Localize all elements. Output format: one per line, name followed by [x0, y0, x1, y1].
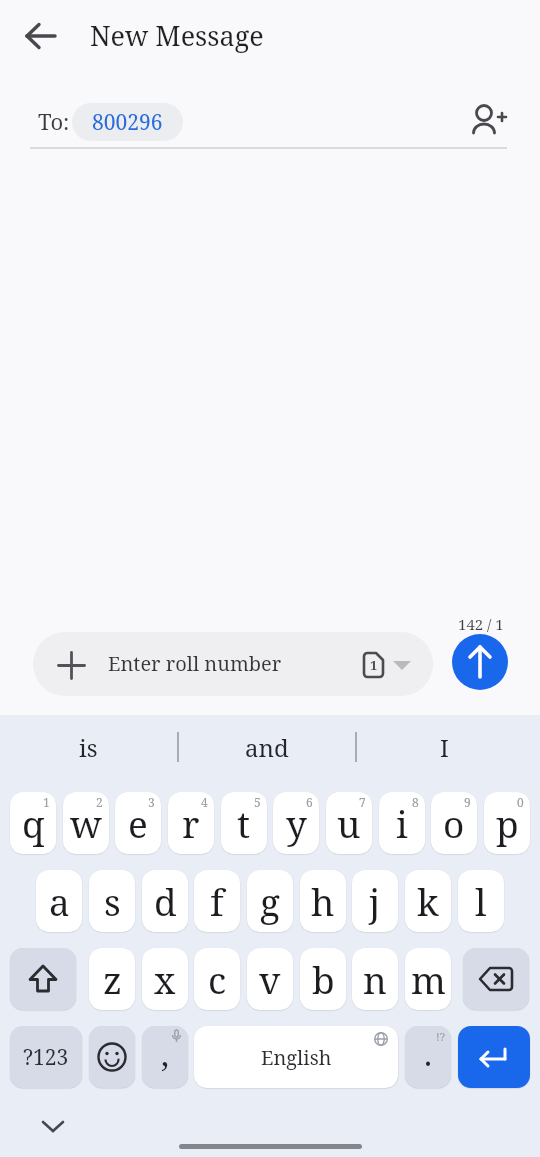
button[interactable]	[24, 20, 58, 52]
button[interactable]	[463, 948, 529, 1010]
staticText: 800296	[92, 108, 163, 137]
staticText: g	[260, 876, 280, 926]
button[interactable]: c	[194, 948, 240, 1010]
staticText: r	[182, 798, 200, 848]
button[interactable]: m	[405, 948, 451, 1010]
staticText: h	[311, 876, 335, 926]
staticText: ,	[161, 1032, 170, 1076]
button[interactable]: s	[89, 870, 135, 932]
button[interactable]: a	[36, 870, 82, 932]
staticText: j	[369, 876, 381, 926]
staticText: ?123	[23, 1043, 69, 1072]
staticText: .	[424, 1032, 433, 1076]
button[interactable]: Enter roll number	[33, 632, 433, 696]
button[interactable]: g	[247, 870, 293, 932]
staticText: is	[79, 731, 98, 764]
button[interactable]: v	[247, 948, 293, 1010]
button[interactable]: 800296	[72, 103, 183, 141]
staticText: l	[475, 876, 487, 926]
button[interactable]: r	[168, 792, 214, 854]
staticText: s	[104, 876, 121, 926]
button[interactable]: b	[300, 948, 346, 1010]
staticText: 1	[43, 794, 50, 810]
button[interactable]: o	[431, 792, 477, 854]
staticText: 6	[306, 794, 313, 810]
button[interactable]: q	[10, 792, 56, 854]
staticText: 2	[96, 794, 103, 810]
button[interactable]: is	[0, 727, 177, 767]
button[interactable]: .	[405, 1026, 451, 1088]
staticText: y	[286, 798, 307, 848]
button[interactable]	[38, 1114, 68, 1138]
staticText: x	[154, 954, 176, 1004]
button[interactable]: z	[89, 948, 135, 1010]
staticText: e	[128, 798, 148, 848]
staticText: i	[396, 798, 408, 848]
staticText: q	[22, 798, 45, 848]
button[interactable]: x	[142, 948, 188, 1010]
button[interactable]	[458, 1026, 530, 1088]
button[interactable]: h	[300, 870, 346, 932]
button[interactable]: w	[63, 792, 109, 854]
staticText: 8	[412, 794, 419, 810]
staticText: c	[208, 954, 227, 1004]
button[interactable]: e	[115, 792, 161, 854]
button[interactable]: f	[194, 870, 240, 932]
staticText: 7	[359, 794, 366, 810]
staticText: To:	[38, 106, 70, 136]
staticText: 9	[464, 794, 471, 810]
staticText: k	[417, 876, 439, 926]
button[interactable]	[10, 948, 76, 1010]
button[interactable]: t	[221, 792, 267, 854]
button[interactable]: u	[326, 792, 372, 854]
staticText: !?	[436, 1029, 445, 1044]
staticText: d	[154, 876, 177, 926]
staticText: 142 / 1	[458, 614, 504, 634]
staticText: w	[70, 798, 102, 848]
button[interactable]: i	[379, 792, 425, 854]
staticText: 3	[148, 794, 155, 810]
button[interactable]: j	[352, 870, 398, 932]
staticText: Enter roll number	[108, 650, 282, 677]
button[interactable]: and	[178, 727, 355, 767]
staticText: n	[363, 954, 387, 1004]
button[interactable]: d	[142, 870, 188, 932]
button[interactable]	[468, 102, 506, 138]
button[interactable]: I	[356, 727, 533, 767]
staticText: v	[259, 954, 281, 1004]
staticText: a	[49, 876, 70, 926]
staticText: New Message	[90, 17, 264, 54]
button[interactable]	[452, 634, 508, 690]
button[interactable]: l	[458, 870, 504, 932]
staticText: English	[261, 1044, 332, 1071]
staticText: t	[237, 798, 251, 848]
staticText: m	[411, 954, 446, 1004]
button[interactable]: n	[352, 948, 398, 1010]
staticText: b	[312, 954, 335, 1004]
button[interactable]: p	[484, 792, 530, 854]
staticText: 5	[254, 794, 261, 810]
staticText: f	[210, 876, 224, 926]
button[interactable]	[89, 1026, 135, 1088]
staticText: 4	[201, 794, 208, 810]
button[interactable]: y	[273, 792, 319, 854]
staticText: p	[496, 798, 519, 848]
button[interactable]: k	[405, 870, 451, 932]
button[interactable]: ?123	[10, 1026, 82, 1088]
staticText: z	[103, 954, 122, 1004]
staticText: o	[443, 798, 465, 848]
staticText: 0	[517, 794, 524, 810]
staticText: and	[245, 731, 289, 764]
staticText: I	[440, 731, 449, 764]
button[interactable]: English	[194, 1026, 398, 1088]
staticText: 1	[370, 656, 378, 674]
staticText: u	[337, 798, 361, 848]
button[interactable]: ,	[142, 1026, 188, 1088]
